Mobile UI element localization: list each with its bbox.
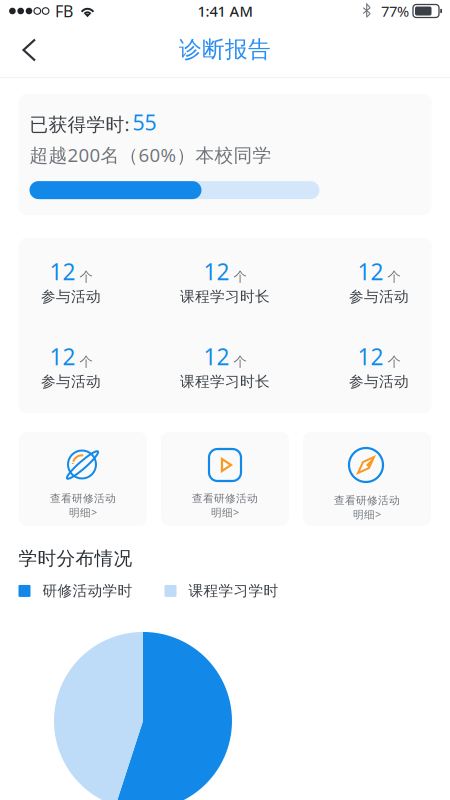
staticText: 个	[387, 269, 400, 285]
staticText: 学时分布情况	[18, 547, 132, 570]
staticText: FB	[55, 0, 73, 22]
staticText: 查看研修活动	[192, 492, 258, 505]
staticText: 55	[132, 108, 156, 136]
staticText: 个	[79, 269, 92, 285]
staticText: 课程学习时长	[180, 287, 270, 305]
button[interactable]: 查看研修活动	[161, 432, 289, 526]
button[interactable]: 查看研修活动	[19, 432, 147, 526]
staticText: 1:41 AM	[197, 1, 252, 21]
staticText: 明细>	[353, 507, 381, 521]
staticText: 个	[79, 354, 92, 370]
staticText: :	[124, 111, 129, 136]
staticText: 12	[49, 256, 75, 286]
button[interactable]: 12	[0, 343, 148, 389]
button[interactable]: 12	[0, 258, 148, 304]
staticText: 个	[233, 269, 246, 285]
staticText: 明细>	[69, 505, 97, 519]
staticText: 课程学习学时	[188, 582, 278, 600]
staticText: 查看研修活动	[50, 492, 116, 505]
staticText: 参与活动	[41, 372, 101, 390]
button[interactable]: 12	[302, 343, 450, 389]
button[interactable]: 12	[148, 258, 302, 304]
staticText: 77%	[381, 1, 409, 21]
staticText: 明细>	[211, 505, 239, 519]
button[interactable]: 12	[148, 343, 302, 389]
staticText: 查看研修活动	[334, 494, 400, 507]
staticText: 个	[387, 354, 400, 370]
staticText: 超越200名（60%）本校同学	[29, 142, 271, 167]
staticText: 参与活动	[41, 287, 101, 305]
staticText: 12	[203, 341, 229, 371]
button[interactable]: 返回	[0, 25, 50, 73]
staticText: 12	[49, 341, 75, 371]
staticText: 12	[357, 341, 383, 371]
staticText: 个	[233, 354, 246, 370]
staticText: 已获得学时	[29, 113, 124, 136]
staticText: 研修活动学时	[42, 582, 132, 600]
staticText: 12	[203, 256, 229, 286]
button[interactable]: 查看研修活动	[303, 432, 431, 526]
staticText: 课程学习时长	[180, 372, 270, 390]
staticText: 参与活动	[349, 372, 409, 390]
staticText: 参与活动	[349, 287, 409, 305]
staticText: 诊断报告	[179, 36, 271, 63]
staticText: 12	[357, 256, 383, 286]
button[interactable]: 12	[302, 258, 450, 304]
